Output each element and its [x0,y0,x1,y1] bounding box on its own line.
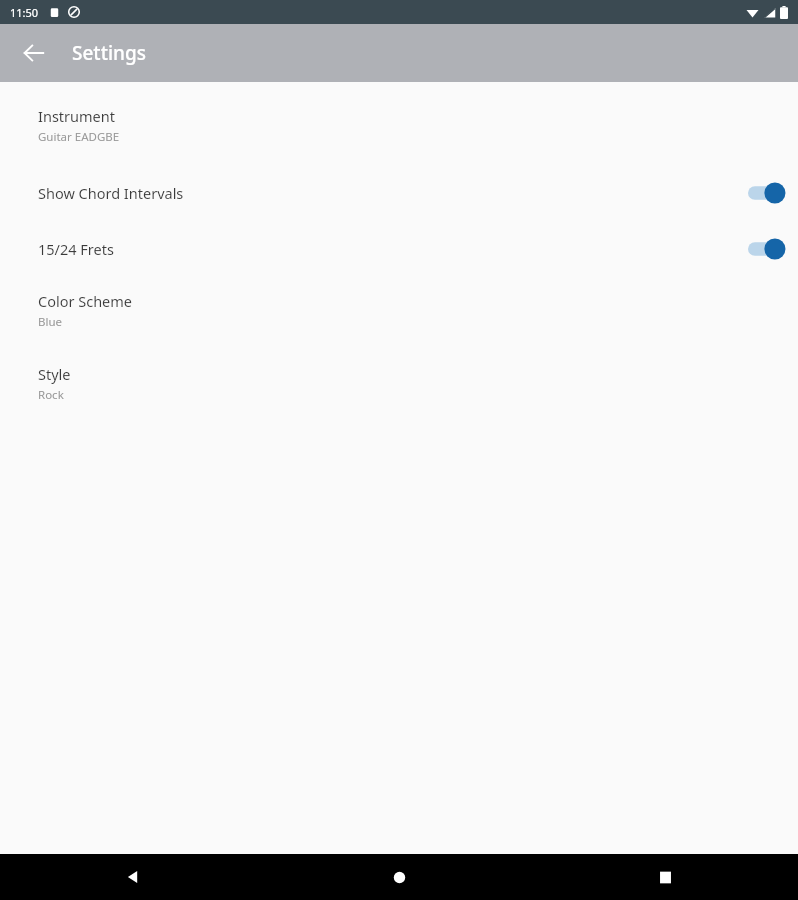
button[interactable]: Show Chord Intervals [0,173,798,213]
button[interactable]: Toggle [748,238,786,260]
button[interactable]: Style [0,358,798,409]
staticText: Blue [38,314,63,330]
staticText: Settings [72,40,146,66]
button[interactable]: Color Scheme [0,285,798,336]
staticText: Color Scheme [38,291,133,311]
button[interactable]: Toggle [748,182,786,204]
staticText: Instrument [38,106,115,126]
staticText: 11:50 [10,5,39,20]
button[interactable]: Home [377,855,421,899]
button[interactable]: Back [111,855,155,899]
staticText: Guitar EADGBE [38,129,120,145]
button[interactable]: 15/24 Frets [0,229,798,269]
staticText: Style [38,364,71,384]
button[interactable]: Back [12,31,56,75]
staticText: Rock [38,387,64,403]
button[interactable]: Instrument [0,100,798,151]
staticText: 15/24 Frets [38,239,114,259]
button[interactable]: Recent apps [643,855,687,899]
staticText: Show Chord Intervals [38,183,184,203]
